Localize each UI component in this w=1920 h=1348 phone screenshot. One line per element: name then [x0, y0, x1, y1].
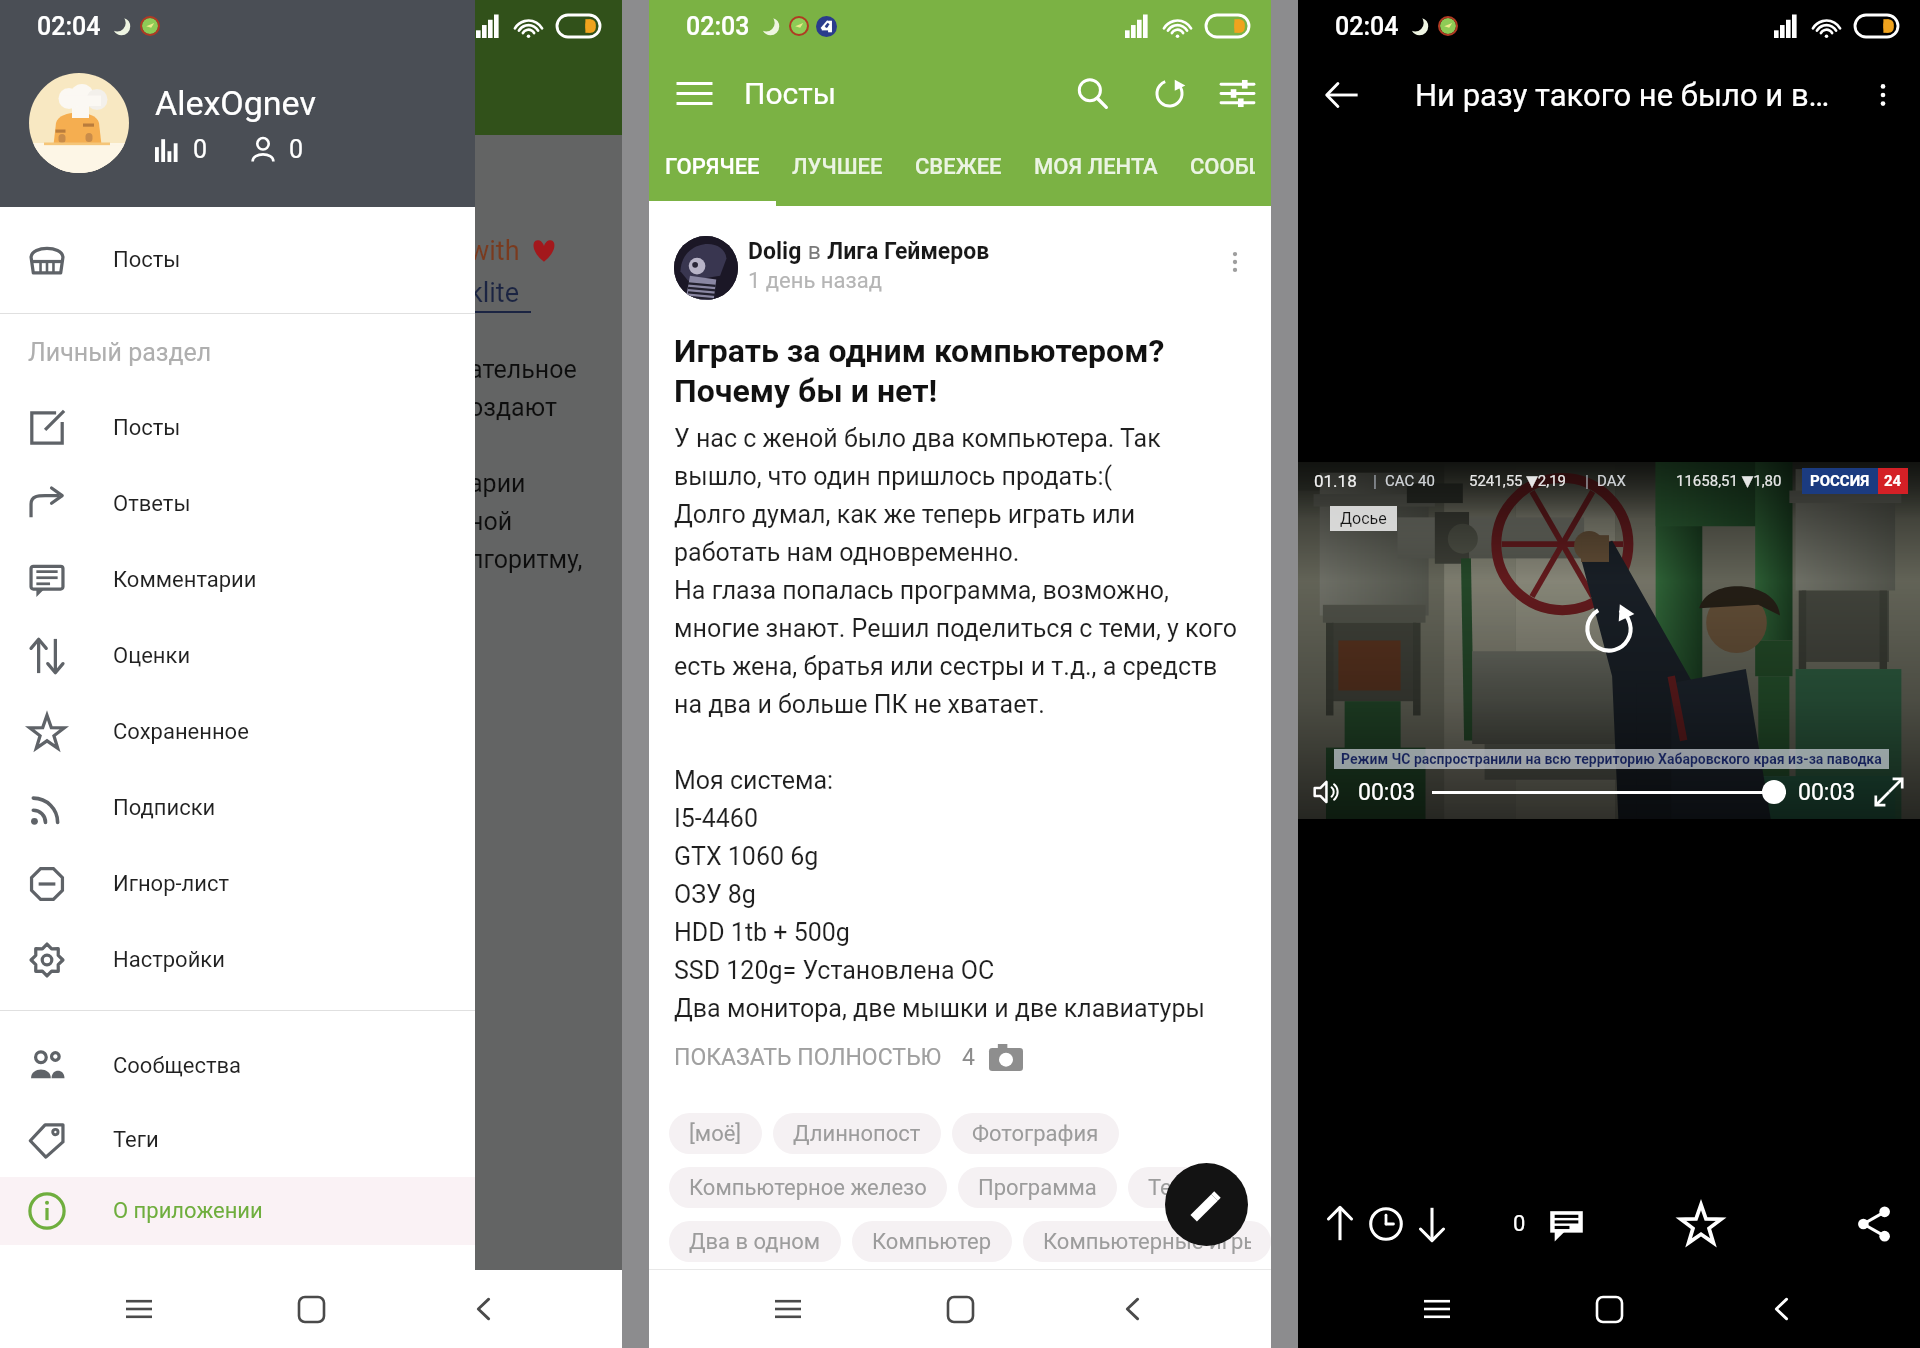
- button[interactable]: ГОРЯЧЕЕ: [649, 134, 776, 206]
- button[interactable]: Текст: [1128, 1167, 1226, 1208]
- button[interactable]: [моё]: [669, 1113, 762, 1154]
- staticText: 01.18: [1314, 471, 1357, 491]
- staticText: DAX: [1597, 472, 1626, 490]
- button[interactable]: Back: [1748, 1275, 1816, 1343]
- button[interactable]: СООБЩЕ: [1174, 134, 1271, 206]
- staticText: 0: [193, 135, 208, 164]
- staticText: 0: [1513, 1211, 1526, 1237]
- button[interactable]: Подписки: [0, 770, 475, 846]
- button[interactable]: Home: [277, 1275, 345, 1343]
- button[interactable]: Посты: [0, 390, 475, 466]
- button[interactable]: Recents: [105, 1275, 173, 1343]
- button[interactable]: Комментарии: [0, 542, 475, 618]
- staticText: Режим ЧС распространили на всю территори…: [1341, 751, 1882, 767]
- button[interactable]: Refresh: [1135, 59, 1203, 127]
- button[interactable]: О приложении: [0, 1177, 475, 1245]
- staticText: 00:03: [1358, 779, 1416, 806]
- staticText: Dolig: [748, 238, 802, 265]
- button[interactable]: Сохраненное: [0, 694, 475, 770]
- button[interactable]: Два в одном: [669, 1221, 841, 1262]
- button[interactable]: Home: [926, 1275, 994, 1343]
- staticText: CAC 40: [1385, 472, 1435, 490]
- staticText: Длиннопост: [793, 1121, 921, 1147]
- staticText: 4: [962, 1044, 975, 1071]
- staticText: Подписки: [113, 795, 216, 821]
- button[interactable]: Mute: [1308, 773, 1346, 811]
- staticText: Ни разу такого не было и в…: [1415, 77, 1830, 113]
- button[interactable]: Back: [450, 1275, 518, 1343]
- staticText: О приложении: [113, 1198, 263, 1224]
- button[interactable]: Recents: [1403, 1275, 1471, 1343]
- staticText: Программа: [978, 1175, 1097, 1201]
- button[interactable]: Share: [1846, 1196, 1902, 1252]
- button[interactable]: Посты: [0, 207, 475, 313]
- staticText: Оценки: [113, 643, 191, 669]
- staticText: 5241,55 ▼2,19: [1469, 472, 1567, 490]
- staticText: Компьютерное железо: [689, 1175, 927, 1201]
- button[interactable]: Downvote: [1409, 1201, 1455, 1247]
- staticText: 1 день назад: [748, 268, 882, 294]
- staticText: ЛУЧШЕЕ: [792, 154, 883, 180]
- staticText: 11658,51 ▼1,80: [1676, 472, 1782, 490]
- button[interactable]: History: [1363, 1201, 1409, 1247]
- button[interactable]: More options: [1848, 60, 1918, 130]
- button[interactable]: Оценки: [0, 618, 475, 694]
- button[interactable]: Filter: [1203, 59, 1271, 127]
- button[interactable]: Upvote: [1317, 1201, 1363, 1247]
- staticText: 24: [1884, 472, 1902, 490]
- staticText: [моё]: [689, 1121, 742, 1147]
- button[interactable]: Fullscreen: [1870, 773, 1908, 811]
- staticText: Настройки: [113, 947, 225, 973]
- button[interactable]: Menu: [660, 59, 728, 127]
- staticText: 00:03: [1798, 779, 1856, 806]
- button[interactable]: Ответы: [0, 466, 475, 542]
- button[interactable]: Back: [1099, 1275, 1167, 1343]
- button[interactable]: Save: [1673, 1196, 1729, 1252]
- staticText: Компьютер: [872, 1229, 992, 1255]
- button[interactable]: Create post: [1165, 1163, 1248, 1246]
- staticText: Сообщества: [113, 1053, 242, 1079]
- staticText: МОЯ ЛЕНТА: [1034, 154, 1158, 180]
- staticText: Лига Геймеров: [827, 238, 990, 265]
- button[interactable]: 0: [1513, 1198, 1585, 1250]
- staticText: |: [1585, 472, 1589, 491]
- staticText: Ответы: [113, 491, 191, 517]
- staticText: Фотография: [972, 1121, 1099, 1147]
- staticText: Досье: [1340, 509, 1387, 528]
- staticText: ПОКАЗАТЬ ПОЛНОСТЬЮ: [674, 1044, 942, 1071]
- staticText: Играть за одним компьютером? Почему бы и…: [674, 332, 1165, 410]
- staticText: РОССИЯ: [1810, 472, 1870, 490]
- staticText: Посты: [113, 247, 181, 273]
- button[interactable]: Search: [1058, 59, 1126, 127]
- staticText: Текст: [1148, 1175, 1206, 1201]
- button[interactable]: Теги: [0, 1103, 475, 1177]
- button[interactable]: МОЯ ЛЕНТА: [1018, 134, 1174, 206]
- button[interactable]: Компьютерные игры: [1023, 1221, 1271, 1262]
- button[interactable]: Сообщества: [0, 1029, 475, 1103]
- staticText: Комментарии: [113, 567, 257, 593]
- staticText: Посты: [744, 76, 836, 111]
- button[interactable]: More: [1209, 236, 1261, 288]
- button[interactable]: Home: [1575, 1275, 1643, 1343]
- button[interactable]: Игнор-лист: [0, 846, 475, 922]
- staticText: 0: [289, 135, 304, 164]
- button[interactable]: Настройки: [0, 922, 475, 998]
- button[interactable]: Recents: [754, 1275, 822, 1343]
- staticText: ательное оздают арии ной лгоритму, .: [469, 355, 583, 650]
- staticText: Компьютерные игры: [1043, 1229, 1251, 1255]
- button[interactable]: СВЕЖЕЕ: [899, 134, 1018, 206]
- button[interactable]: ЛУЧШЕЕ: [776, 134, 899, 206]
- button[interactable]: Длиннопост: [773, 1113, 941, 1154]
- button[interactable]: Компьютер: [852, 1221, 1012, 1262]
- staticText: klite: [469, 277, 519, 309]
- staticText: with: [469, 235, 520, 267]
- staticText: 02:03: [686, 12, 750, 41]
- staticText: в: [802, 238, 827, 265]
- button[interactable]: Back: [1307, 60, 1377, 130]
- staticText: Посты: [113, 415, 181, 441]
- button[interactable]: Программа: [958, 1167, 1117, 1208]
- staticText: 02:04: [1335, 12, 1399, 41]
- button[interactable]: Компьютерное железо: [669, 1167, 947, 1208]
- button[interactable]: Фотография: [952, 1113, 1119, 1154]
- staticText: Личный раздел: [28, 338, 212, 367]
